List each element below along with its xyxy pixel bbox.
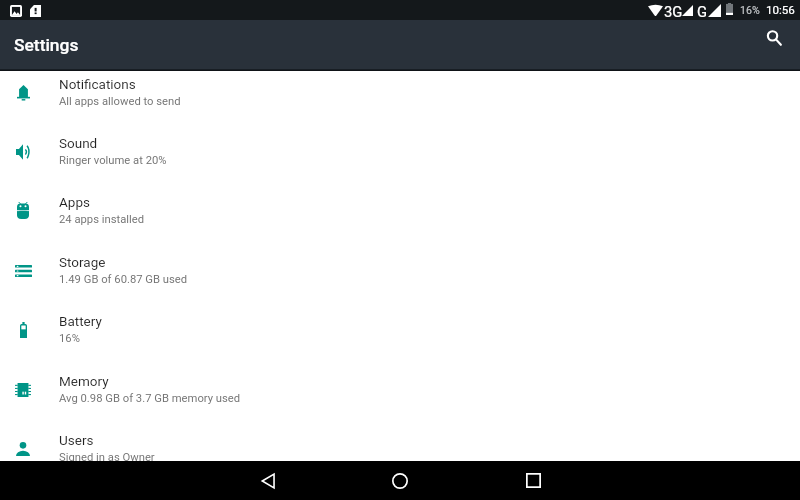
button[interactable]: Storage [0, 250, 800, 309]
button[interactable]: Apps [0, 190, 800, 249]
staticText: Settings [14, 35, 79, 55]
staticText: Signed in as Owner [59, 451, 155, 464]
staticText: 1.49 GB of 60.87 GB used [59, 273, 188, 286]
staticText: 16% [740, 4, 760, 16]
button[interactable]: Home [354, 461, 446, 500]
staticText: Avg 0.98 GB of 3.7 GB memory used [59, 392, 241, 405]
staticText: 10:56 [766, 3, 795, 17]
button[interactable]: Notifications [0, 72, 800, 131]
button[interactable]: Back [222, 461, 314, 500]
staticText: Notifications [59, 76, 136, 92]
staticText: 3G [664, 3, 683, 20]
button[interactable]: Battery [0, 309, 800, 368]
button[interactable]: Users [0, 428, 800, 487]
button[interactable]: Memory [0, 369, 800, 428]
staticText: Battery [59, 313, 102, 329]
staticText: Apps [59, 194, 90, 210]
staticText: 24 apps installed [59, 213, 145, 226]
staticText: All apps allowed to send [59, 95, 181, 108]
staticText: 16% [59, 332, 80, 345]
button[interactable]: Search [752, 17, 792, 57]
staticText: Users [59, 432, 94, 448]
button[interactable]: Sound [0, 131, 800, 190]
staticText: Memory [59, 373, 109, 389]
staticText: G [697, 3, 708, 20]
staticText: Ringer volume at 20% [59, 154, 167, 167]
staticText: Storage [59, 254, 106, 270]
staticText: Sound [59, 135, 98, 151]
button[interactable]: Recents [487, 461, 579, 500]
